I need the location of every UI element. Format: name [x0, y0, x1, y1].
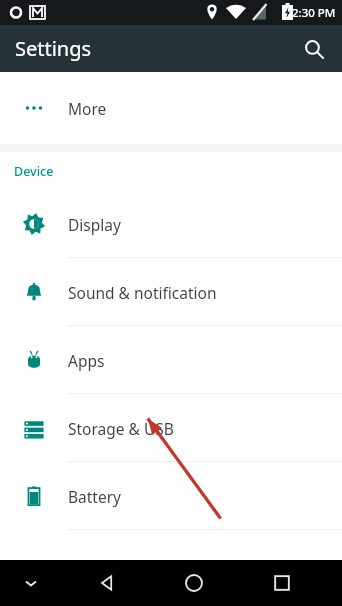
button[interactable]: Back [62, 560, 150, 606]
button[interactable]: Home [150, 560, 238, 606]
staticText: Display [68, 214, 121, 235]
button[interactable]: Sound & notification [0, 258, 342, 326]
button[interactable]: Hide keyboard [0, 560, 62, 606]
staticText: Storage & USB [68, 418, 174, 439]
button[interactable]: Display [0, 190, 342, 258]
staticText: Apps [68, 350, 105, 371]
staticText: Device [14, 163, 54, 180]
staticText: More [68, 98, 107, 119]
button[interactable]: Search [294, 29, 334, 69]
button[interactable]: Battery [0, 462, 342, 530]
staticText: 2:30 PM [292, 5, 336, 21]
button[interactable]: Recent apps [238, 560, 326, 606]
staticText: Battery [68, 486, 122, 507]
button[interactable]: Apps [0, 326, 342, 394]
staticText: Settings [15, 35, 92, 62]
button[interactable]: Storage & USB [0, 394, 342, 462]
staticText: Sound & notification [68, 282, 217, 303]
button[interactable]: More [0, 72, 342, 144]
